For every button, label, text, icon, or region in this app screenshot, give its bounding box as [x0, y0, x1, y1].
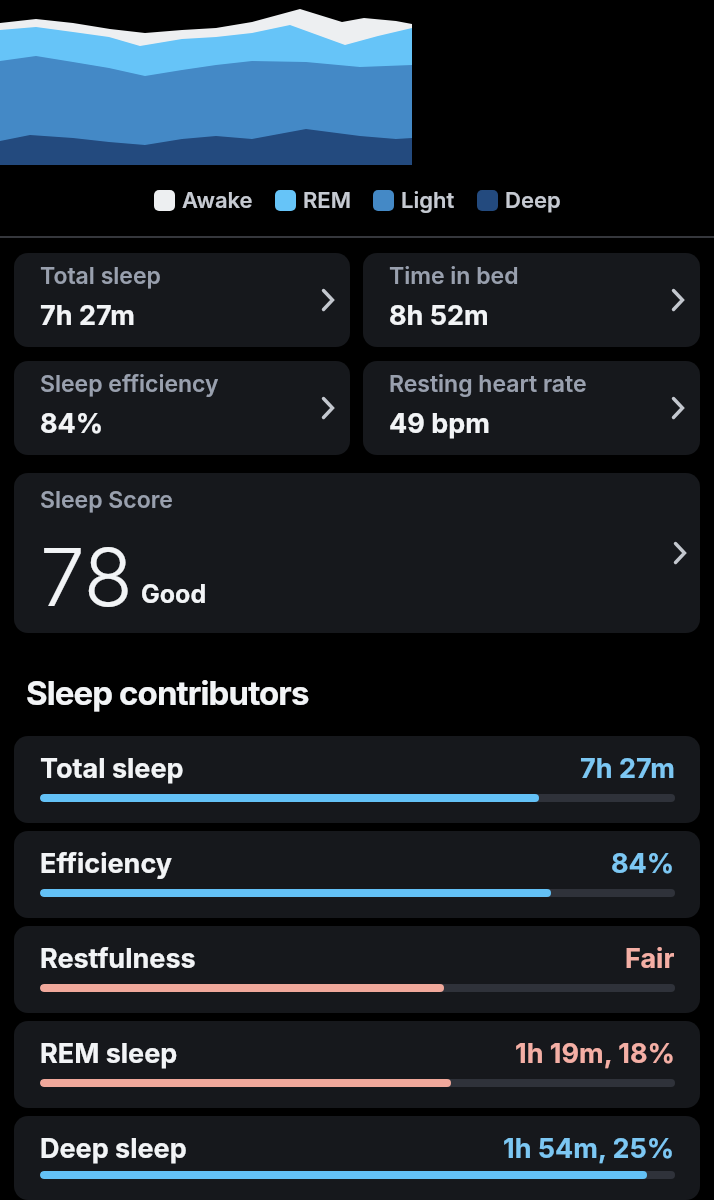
staticText: REM sleep — [40, 1037, 178, 1070]
staticText: 84% — [40, 407, 104, 440]
staticText: Efficiency — [40, 847, 173, 880]
staticText: Sleep contributors — [26, 673, 309, 713]
staticText: Sleep efficiency — [40, 370, 219, 398]
staticText: 8h 52m — [389, 299, 489, 332]
button[interactable]: Restfulness — [14, 926, 700, 1013]
staticText: Deep — [505, 187, 561, 214]
staticText: Deep sleep — [40, 1132, 187, 1165]
staticText: 7h 27m — [40, 299, 135, 332]
staticText: 1h 54m, 25% — [503, 1132, 675, 1165]
button[interactable]: Time in bed — [363, 253, 700, 347]
staticText: Awake — [182, 187, 253, 214]
button[interactable]: Total sleep — [14, 253, 350, 347]
button[interactable]: Sleep efficiency — [14, 361, 350, 455]
button[interactable]: Deep sleep — [14, 1116, 700, 1200]
button[interactable]: REM sleep — [14, 1021, 700, 1108]
button[interactable]: Total sleep — [14, 736, 700, 823]
staticText: 1h 19m, 18% — [515, 1037, 675, 1070]
staticText: Total sleep — [40, 262, 161, 290]
staticText: 84% — [611, 847, 675, 880]
staticText: Light — [401, 187, 455, 214]
staticText: Sleep Score — [40, 486, 173, 514]
staticText: Good — [141, 579, 207, 609]
button[interactable]: Resting heart rate — [363, 361, 700, 455]
staticText: Total sleep — [40, 752, 184, 785]
button[interactable]: Sleep Score — [14, 473, 700, 633]
button[interactable]: Efficiency — [14, 831, 700, 918]
staticText: REM — [303, 187, 351, 214]
staticText: Resting heart rate — [389, 370, 587, 398]
staticText: Fair — [625, 942, 675, 975]
staticText: 49 bpm — [389, 407, 490, 440]
staticText: 7h 27m — [580, 752, 675, 785]
staticText: Restfulness — [40, 942, 196, 975]
staticText: Time in bed — [389, 262, 519, 290]
staticText: 78 — [40, 528, 133, 625]
